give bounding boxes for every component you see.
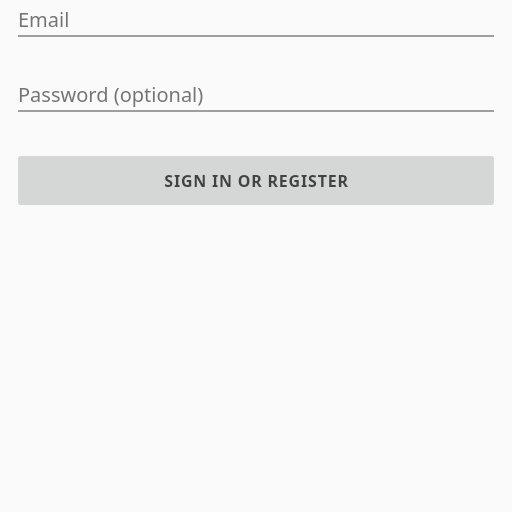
button[interactable]: Password (optional) bbox=[18, 81, 494, 116]
button[interactable]: SIGN IN OR REGISTER bbox=[18, 156, 494, 205]
staticText: SIGN IN OR REGISTER bbox=[164, 170, 349, 192]
staticText: Password (optional) bbox=[18, 81, 204, 108]
button[interactable]: Email bbox=[18, 6, 494, 41]
staticText: Email bbox=[18, 6, 70, 33]
